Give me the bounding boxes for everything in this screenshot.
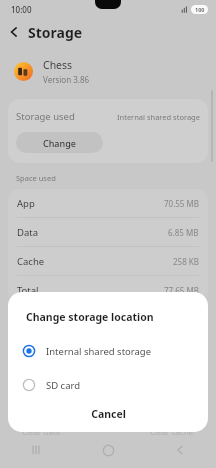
button[interactable]: Internal shared storage <box>8 338 208 364</box>
staticText: Data <box>17 226 39 239</box>
staticText: Clear data <box>22 426 61 437</box>
staticText: 10:00 <box>11 4 32 15</box>
staticText: Change <box>43 137 76 149</box>
button[interactable]: App <box>8 189 208 217</box>
button[interactable]: Total <box>8 276 208 304</box>
staticText: Clear cache <box>150 426 194 437</box>
button[interactable]: Cache <box>8 247 208 275</box>
staticText: 77.65 MB <box>164 285 199 296</box>
staticText: Storage used <box>16 110 75 123</box>
button[interactable]: Cancel <box>8 398 208 430</box>
staticText: App <box>17 197 35 210</box>
staticText: SD card <box>46 379 81 392</box>
staticText: Cancel <box>91 407 126 421</box>
staticText: 100 <box>195 6 205 13</box>
staticText: 258 KB <box>173 256 199 267</box>
staticText: Storage <box>28 23 83 42</box>
staticText: 6.85 MB <box>168 227 199 238</box>
button[interactable]: Recents <box>0 432 72 468</box>
staticText: Version 3.86 <box>43 74 90 85</box>
button[interactable]: Data <box>8 218 208 246</box>
staticText: Total <box>17 284 39 297</box>
staticText: Internal shared storage <box>117 112 200 122</box>
staticText: Chess <box>43 58 73 72</box>
staticText: Internal shared storage <box>46 345 152 358</box>
staticText: Cache <box>17 255 45 268</box>
button[interactable]: Back <box>0 18 28 46</box>
staticText: Space used <box>16 173 56 183</box>
staticText: Change storage location <box>26 310 154 324</box>
button[interactable]: Change <box>16 132 103 153</box>
staticText: 70.55 MB <box>164 198 199 209</box>
button[interactable]: SD card <box>8 372 208 398</box>
